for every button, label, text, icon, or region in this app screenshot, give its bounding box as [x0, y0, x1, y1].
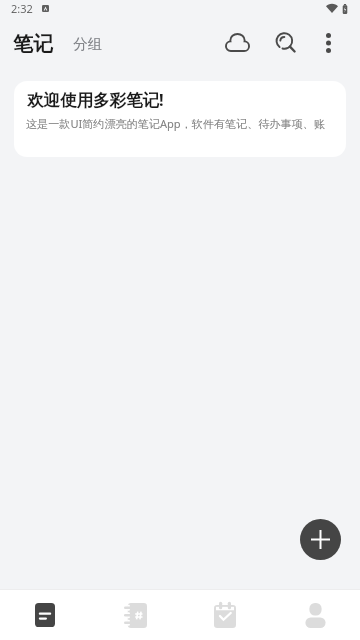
button[interactable]: Search — [265, 22, 306, 63]
button[interactable]: Notebooks — [90, 590, 180, 640]
button[interactable]: Profile — [270, 590, 360, 640]
button[interactable]: Todo — [180, 590, 270, 640]
button[interactable]: Notes — [0, 590, 90, 640]
button[interactable]: More options — [308, 22, 349, 63]
staticText: 欢迎使用多彩笔记! — [27, 88, 164, 111]
staticText: 2:32 — [11, 1, 33, 16]
staticText: 这是一款UI简约漂亮的笔记App，软件有笔记、待办事项、账 — [26, 116, 325, 131]
staticText: 分组 — [73, 35, 102, 53]
staticText: 笔记 — [13, 32, 53, 57]
button[interactable]: 欢迎使用多彩笔记! — [14, 81, 346, 157]
button[interactable]: Cloud sync — [217, 22, 258, 63]
button[interactable]: Add note — [300, 519, 341, 560]
